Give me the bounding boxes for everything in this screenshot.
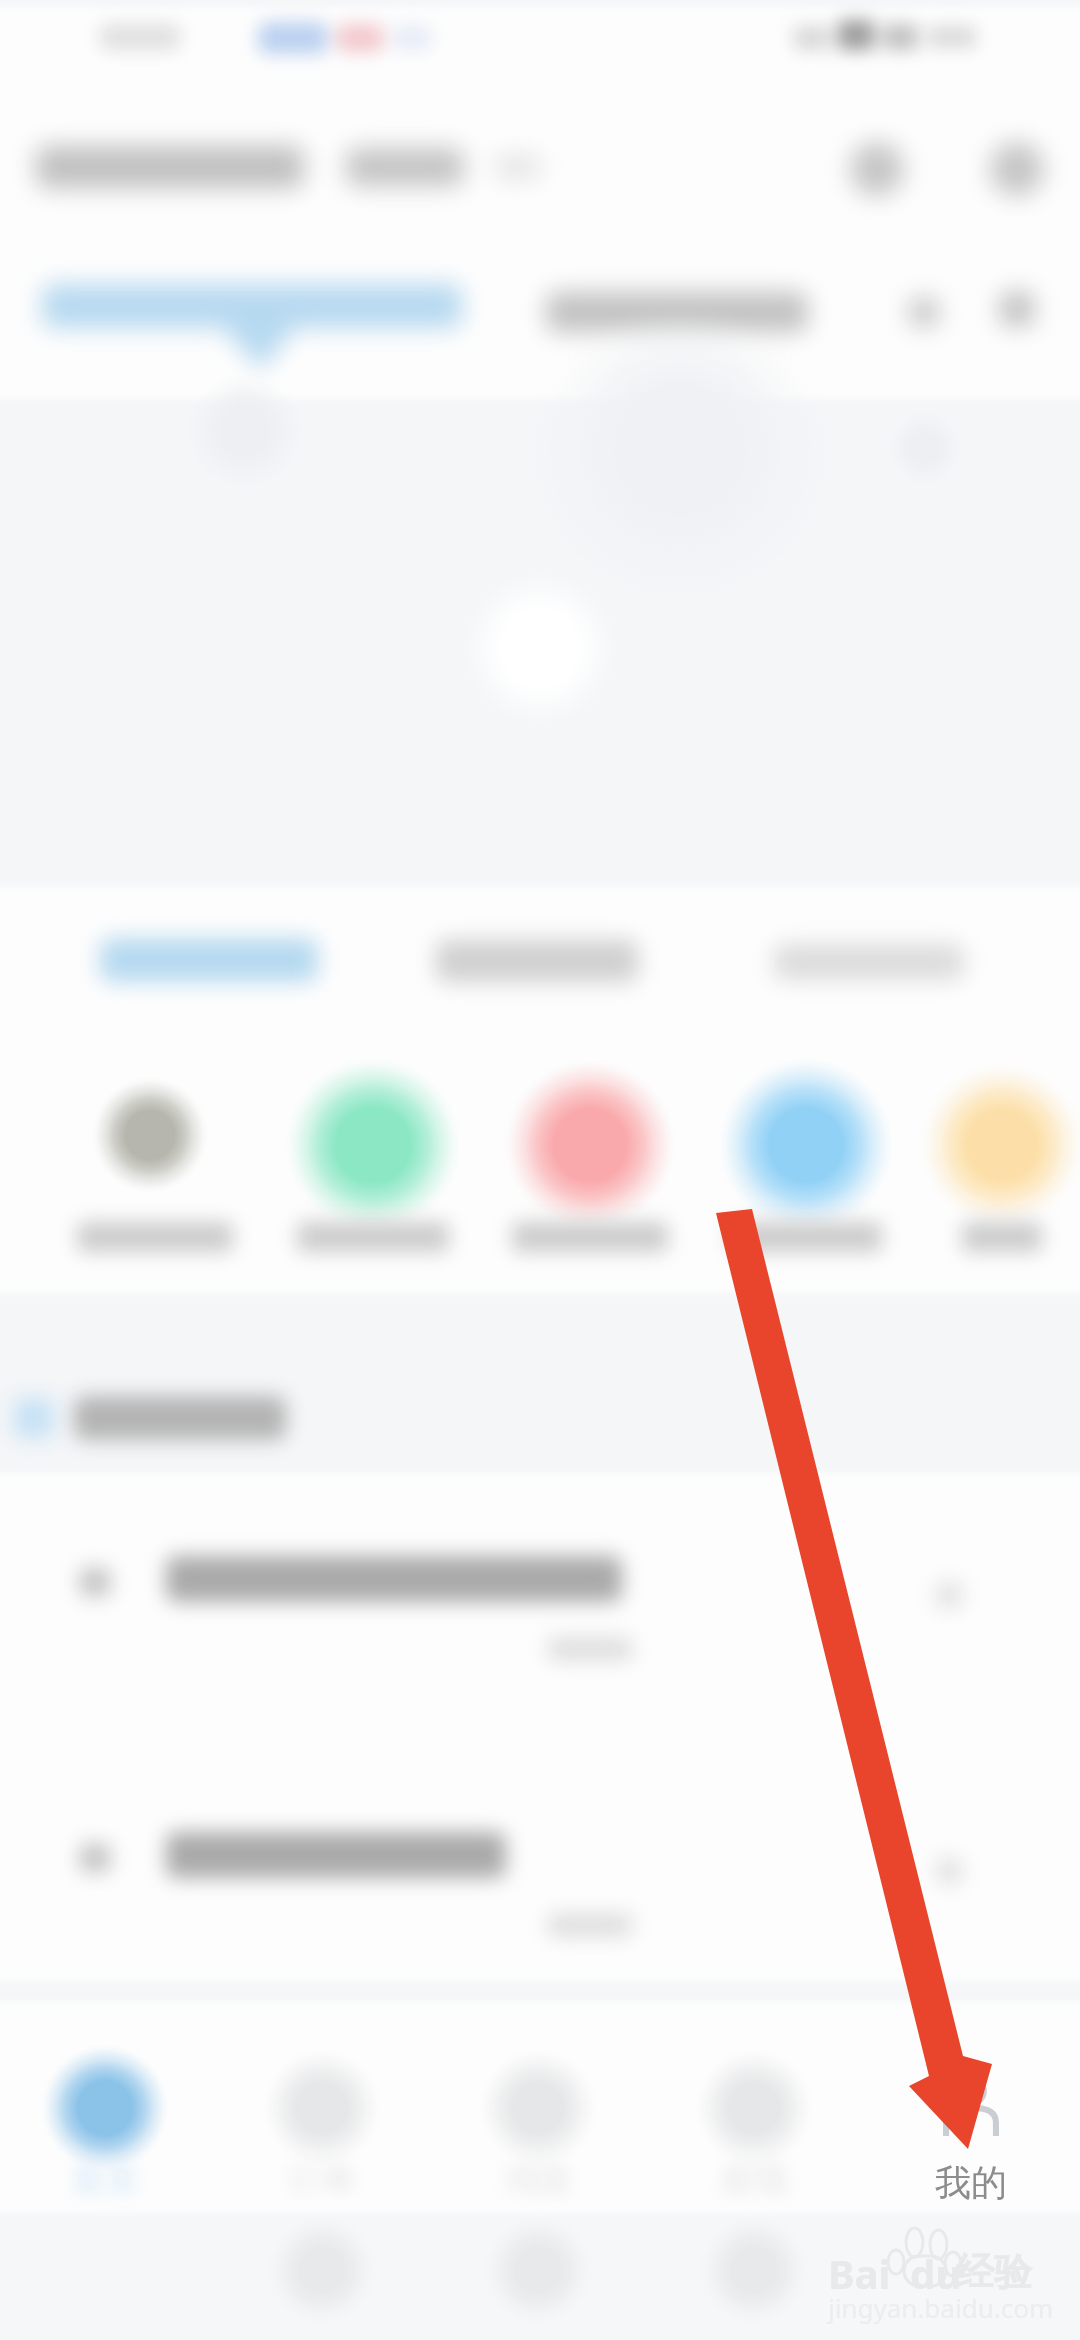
staticText: jingyan.baidu.com (828, 2290, 1054, 2325)
staticText: 首页 (5, 2158, 205, 2201)
other: 我的 (939, 2074, 1003, 2138)
staticText: Bai (828, 2246, 891, 2300)
staticText: 经验 (956, 2248, 1032, 2296)
staticText: 消息 (438, 2158, 638, 2201)
staticText: du (910, 2246, 962, 2300)
button[interactable]: 我的 (866, 2040, 1080, 2220)
staticText: 发现 (654, 2158, 854, 2201)
staticText: 我的 (871, 2160, 1071, 2205)
